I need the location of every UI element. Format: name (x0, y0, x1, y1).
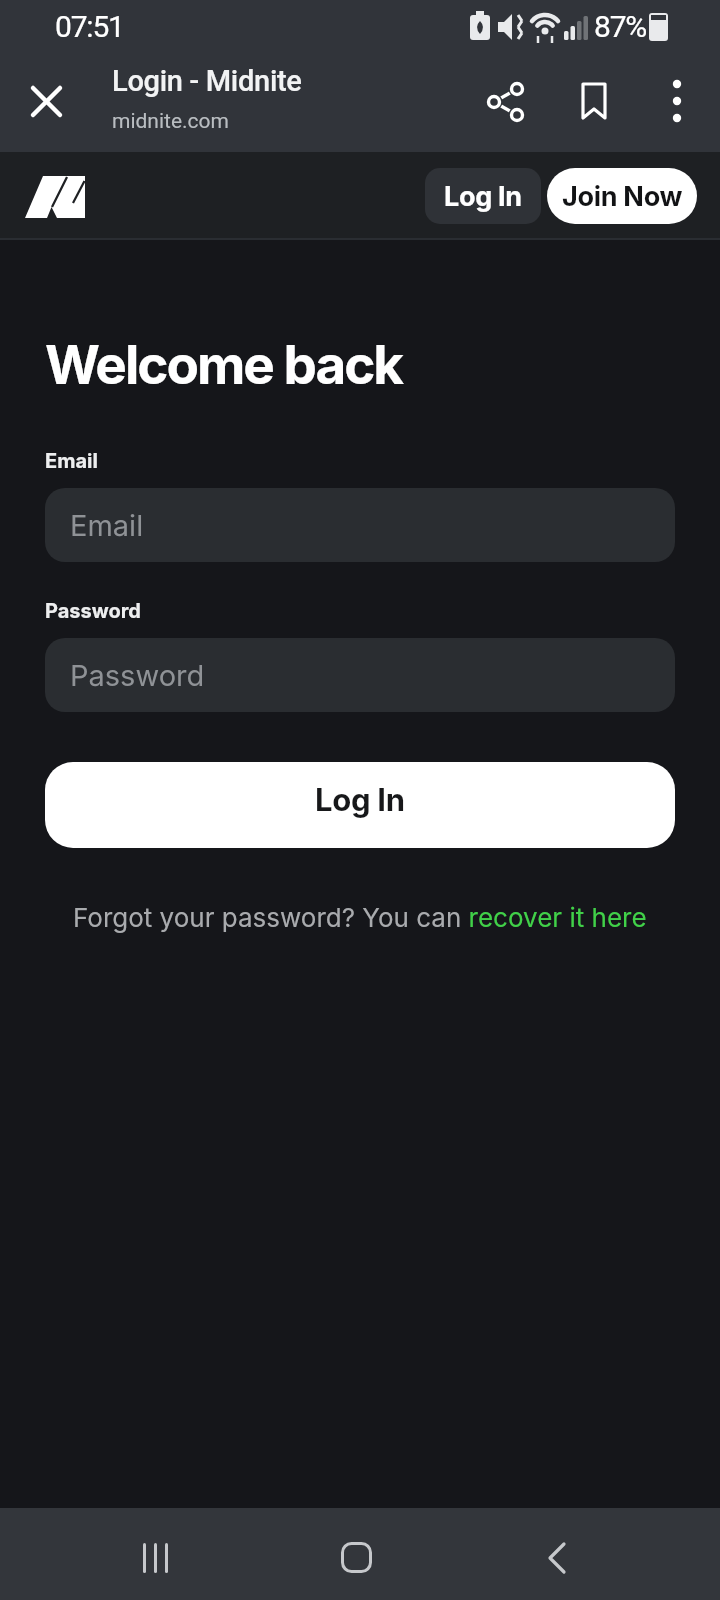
staticText: 87% (594, 9, 647, 44)
button[interactable]: Email (45, 488, 675, 562)
button[interactable] (569, 73, 625, 129)
button[interactable]: Log In (45, 762, 675, 848)
staticText: Join Now (562, 180, 683, 213)
button[interactable] (18, 73, 74, 129)
button[interactable]: Password (45, 638, 675, 712)
staticText: midnite.com (112, 109, 229, 134)
button[interactable] (479, 73, 535, 129)
staticText: 07:51 (55, 9, 124, 44)
button[interactable]: Forgot your password? You can recover it… (73, 902, 647, 933)
staticText: Log In (315, 781, 405, 819)
button[interactable]: Join Now (547, 168, 697, 224)
button[interactable] (326, 1527, 386, 1587)
button[interactable] (527, 1528, 587, 1588)
staticText: Email (70, 508, 144, 543)
staticText: Login - Midnite (112, 64, 302, 98)
staticText: Password (70, 658, 205, 693)
staticText: Welcome back (45, 333, 403, 397)
staticText: Log In (444, 180, 522, 213)
button[interactable] (649, 73, 705, 129)
button[interactable] (125, 1528, 185, 1588)
staticText: Password (45, 599, 141, 623)
staticText: Email (45, 449, 98, 473)
button[interactable]: Log In (425, 168, 541, 224)
